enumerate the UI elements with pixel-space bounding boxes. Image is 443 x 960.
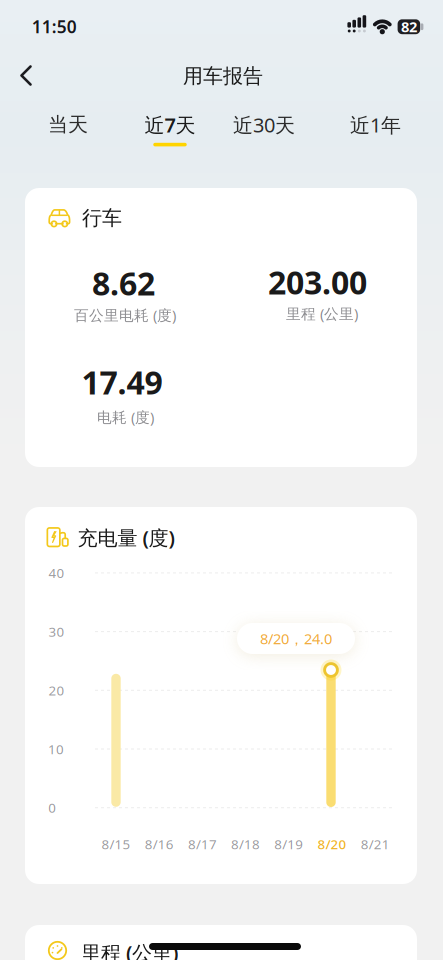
- staticText: 充电量 (度): [77, 524, 174, 551]
- staticText: 8/16: [145, 835, 174, 853]
- staticText: 当天: [48, 112, 88, 137]
- staticText: 8.62: [92, 262, 155, 304]
- staticText: 203.00: [268, 261, 367, 303]
- staticText: 近1年: [350, 111, 401, 138]
- staticText: 11:50: [32, 15, 77, 38]
- button[interactable]: 当天: [30, 105, 106, 145]
- staticText: 里程 (公里): [81, 939, 178, 960]
- staticText: 8/21: [361, 835, 390, 853]
- staticText: 8/19: [274, 835, 303, 853]
- staticText: 10: [48, 740, 64, 758]
- staticText: 8/20，24.0: [260, 629, 332, 648]
- staticText: 里程 (公里): [286, 304, 358, 323]
- staticText: 30: [48, 623, 64, 640]
- staticText: 8/17: [188, 835, 217, 853]
- staticText: 电耗 (度): [97, 407, 154, 427]
- staticText: 近30天: [233, 111, 295, 138]
- staticText: 17.49: [81, 361, 162, 403]
- button[interactable]: 返回: [6, 55, 46, 95]
- staticText: 百公里电耗 (度): [74, 305, 176, 325]
- staticText: 20: [48, 681, 64, 699]
- button[interactable]: 近1年: [330, 105, 420, 145]
- staticText: 行车: [82, 206, 122, 230]
- staticText: 82: [401, 17, 417, 36]
- staticText: 8/18: [231, 835, 260, 853]
- staticText: 40: [48, 564, 64, 582]
- staticText: 用车报告: [183, 64, 263, 88]
- button[interactable]: 近7天: [125, 103, 215, 149]
- staticText: 近7天: [144, 111, 195, 138]
- staticText: 8/20: [317, 835, 346, 853]
- staticText: 8/15: [101, 835, 130, 853]
- button[interactable]: 近30天: [217, 105, 311, 145]
- staticText: 0: [48, 799, 56, 816]
